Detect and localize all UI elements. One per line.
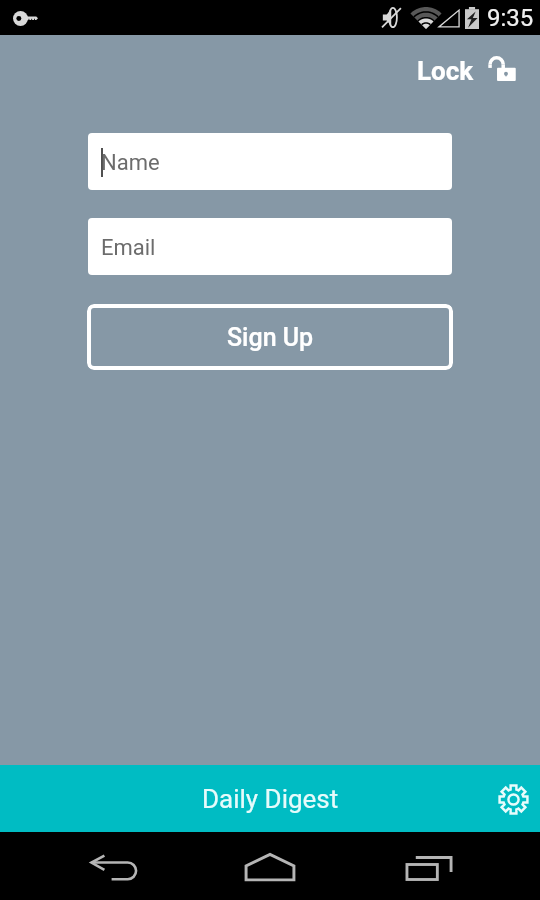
button[interactable]: Settings — [489, 775, 537, 823]
button[interactable]: Lock — [411, 51, 522, 91]
button[interactable]: Name — [88, 133, 452, 190]
button[interactable]: Back — [54, 834, 174, 900]
button[interactable]: Sign Up — [87, 304, 453, 370]
staticText: Sign Up — [227, 323, 314, 352]
button[interactable]: Recent apps — [369, 834, 489, 900]
staticText: 9:35 — [487, 4, 534, 32]
button[interactable]: Home — [210, 833, 330, 900]
staticText: Email — [101, 235, 156, 261]
staticText: Name — [101, 150, 160, 176]
staticText: Lock — [417, 56, 474, 86]
button[interactable]: Email — [88, 218, 452, 275]
staticText: Daily Digest — [202, 784, 339, 814]
